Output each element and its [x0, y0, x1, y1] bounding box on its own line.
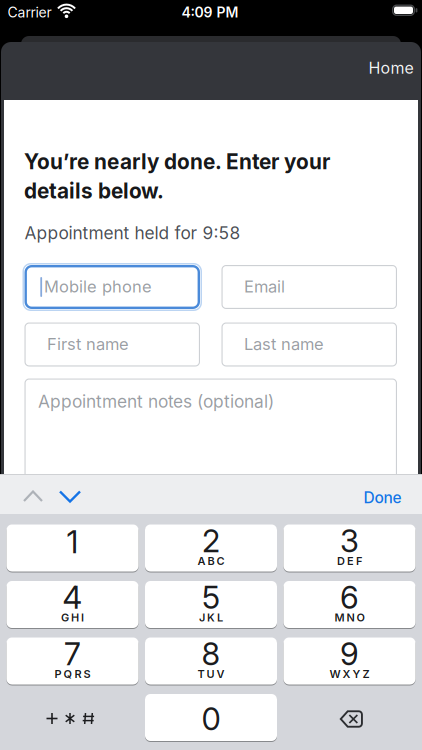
staticText: 9	[340, 635, 359, 673]
staticText: First name	[47, 334, 129, 354]
button[interactable]: 2	[145, 524, 277, 572]
staticText: Mobile phone	[44, 276, 152, 296]
button[interactable]: Delete	[283, 693, 415, 740]
staticText: W X Y Z	[329, 667, 369, 681]
button[interactable]: Last name	[221, 322, 397, 366]
staticText: P Q R S	[54, 667, 90, 681]
staticText: G H I	[61, 611, 84, 624]
button[interactable]: 8	[145, 637, 277, 685]
staticText: 8	[201, 635, 220, 673]
button[interactable]: Mobile phone	[22, 263, 202, 311]
button[interactable]: 4	[6, 580, 138, 628]
button[interactable]: 9	[283, 637, 415, 685]
staticText: Appointment held for 9:58	[24, 222, 240, 243]
button[interactable]: 3	[283, 524, 415, 572]
staticText: 1	[66, 523, 78, 561]
button[interactable]: 1	[6, 524, 138, 572]
button[interactable]: Previous field	[18, 476, 48, 516]
button[interactable]: 6	[283, 580, 415, 628]
staticText: 0	[201, 700, 220, 738]
button[interactable]: 0	[145, 693, 277, 741]
button[interactable]: 7	[6, 637, 138, 685]
staticText: Appointment notes (optional)	[38, 391, 274, 412]
staticText: 7	[64, 635, 81, 673]
staticText: 3	[340, 522, 359, 560]
button[interactable]: Symbols	[6, 693, 138, 740]
button[interactable]: Appointment notes (optional)	[24, 378, 397, 488]
button[interactable]: 5	[145, 580, 277, 628]
staticText: M N O	[334, 611, 364, 624]
button[interactable]: Home	[353, 53, 422, 83]
button[interactable]: Email	[221, 265, 397, 309]
staticText: Email	[244, 276, 285, 296]
staticText: A B C	[197, 554, 224, 568]
button[interactable]: First name	[24, 322, 200, 366]
staticText: 2	[202, 522, 220, 560]
button[interactable]: Next field	[54, 476, 86, 516]
button[interactable]: Done	[347, 477, 417, 517]
staticText: Last name	[244, 334, 324, 354]
staticText: 4:09 PM	[181, 4, 238, 21]
staticText: 4	[62, 579, 82, 616]
staticText: Done	[363, 488, 401, 507]
staticText: Home	[368, 58, 413, 78]
staticText: D E F	[337, 554, 362, 568]
staticText: J K L	[199, 611, 223, 624]
staticText: 5	[202, 579, 220, 616]
staticText: You’re nearly done. Enter your details b…	[24, 149, 330, 203]
staticText: T U V	[197, 667, 224, 681]
staticText: 6	[340, 579, 359, 616]
staticText: Carrier	[7, 4, 51, 21]
